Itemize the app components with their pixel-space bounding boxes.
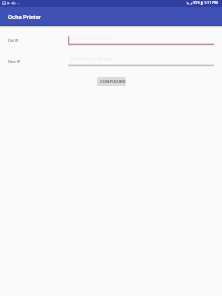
staticText: Enter current IP addr (70, 36, 112, 41)
button[interactable]: Enter current IP addr (68, 34, 214, 45)
staticText: Enter the new IP addr (70, 57, 113, 62)
staticText: New IP: (8, 59, 22, 64)
staticText: 1:11 PM (204, 1, 218, 5)
button[interactable]: Enter the new IP addr (68, 55, 214, 66)
staticText: CONFIGURE (100, 79, 126, 84)
button[interactable]: CONFIGURE (97, 77, 126, 86)
staticText: Ocha Printer (8, 14, 41, 21)
staticText: 92% (193, 1, 200, 5)
staticText: Old IP: (8, 38, 20, 43)
